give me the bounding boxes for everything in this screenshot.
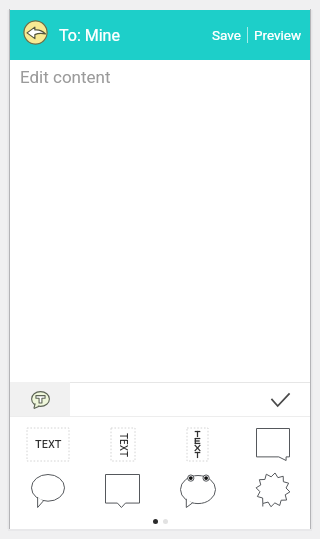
staticText: Save [212, 27, 241, 43]
button[interactable]: Confirm [263, 383, 297, 417]
button[interactable]: Eyes bubble [160, 468, 235, 514]
staticText: To: Mine [59, 26, 120, 45]
button[interactable]: Save [206, 17, 247, 53]
button[interactable]: Stacked text [160, 421, 235, 468]
button[interactable]: Burst bubble [235, 468, 310, 514]
button[interactable]: Vertical text [85, 421, 160, 468]
staticText: Edit content [20, 67, 111, 87]
button[interactable]: Text stickers [10, 382, 70, 417]
button[interactable]: Square bubble [85, 468, 160, 514]
staticText: Preview [254, 27, 302, 43]
button[interactable]: Horizontal text [10, 421, 85, 468]
staticText: TEXT [35, 438, 62, 451]
button[interactable]: Rectangular bubble [235, 421, 310, 468]
staticText: TEXT [117, 433, 129, 458]
button[interactable]: Oval bubble [10, 468, 85, 514]
button[interactable]: Back [23, 20, 48, 45]
button[interactable]: Preview [248, 17, 308, 53]
